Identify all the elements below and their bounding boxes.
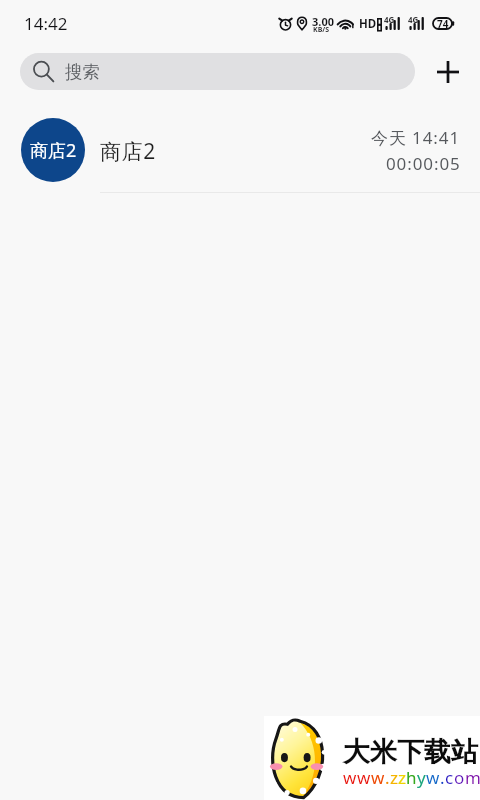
staticText: z: [398, 766, 406, 789]
staticText: 74: [437, 17, 449, 30]
staticText: HD: [359, 16, 377, 32]
staticText: 4G: [408, 14, 419, 25]
staticText: c: [445, 766, 454, 789]
staticText: 4G: [384, 14, 395, 25]
staticText: 3.00: [312, 14, 334, 29]
button[interactable]: Add: [428, 52, 468, 92]
staticText: w: [426, 766, 440, 789]
staticText: 14:42: [24, 12, 68, 35]
staticText: .: [385, 766, 390, 789]
staticText: 搜索: [65, 61, 100, 83]
staticText: z: [390, 766, 398, 789]
staticText: o: [454, 766, 465, 789]
staticText: 商店2: [100, 137, 156, 166]
staticText: y: [417, 766, 426, 789]
staticText: w: [371, 766, 385, 789]
staticText: h: [406, 766, 417, 789]
staticText: m: [465, 766, 480, 789]
staticText: .: [440, 766, 445, 789]
staticText: 今天 14:41: [371, 126, 461, 149]
button[interactable]: 商店2: [0, 107, 480, 193]
staticText: 00:00:05: [386, 152, 461, 175]
staticText: 大米下载站: [343, 735, 478, 769]
staticText: w: [343, 766, 357, 789]
button[interactable]: 搜索: [20, 53, 415, 90]
staticText: KB/S: [313, 25, 330, 35]
staticText: w: [357, 766, 371, 789]
staticText: 商店2: [30, 138, 77, 163]
